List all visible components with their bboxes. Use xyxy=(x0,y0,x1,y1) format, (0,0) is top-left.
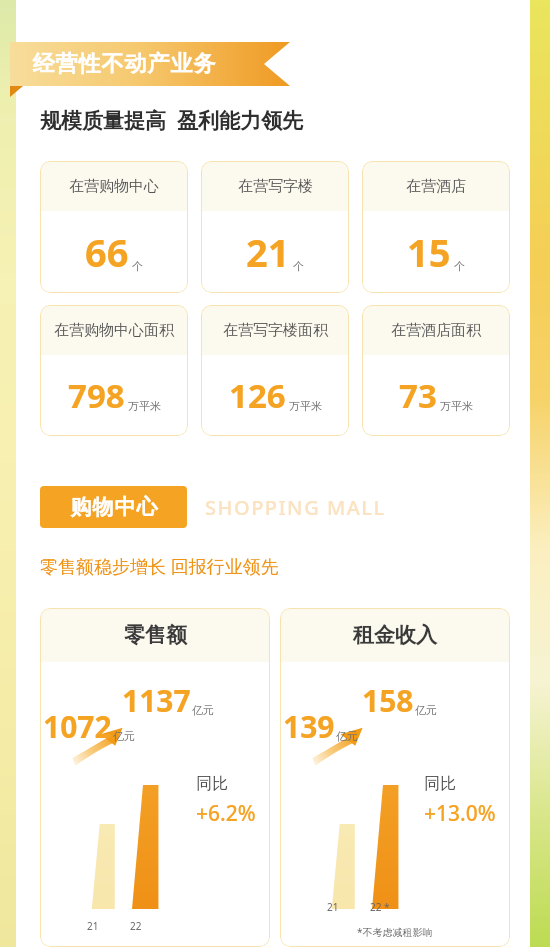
staticText: 购物中心 xyxy=(70,494,158,520)
staticText: 15 xyxy=(407,226,451,278)
staticText: 126 xyxy=(229,373,286,418)
button[interactable]: 在营酒店面积 xyxy=(362,305,510,436)
staticText: 139 xyxy=(283,706,335,747)
staticText: 1072 xyxy=(43,706,112,747)
staticText: 22 * xyxy=(370,900,390,914)
staticText: 个 xyxy=(454,259,465,273)
staticText: 21 xyxy=(246,226,290,278)
staticText: +13.0% xyxy=(424,799,496,828)
staticText: 在营酒店 xyxy=(406,177,466,196)
staticText: 在营写字楼面积 xyxy=(223,321,328,340)
staticText: 万平米 xyxy=(440,399,473,413)
staticText: 798 xyxy=(68,373,125,418)
staticText: 21 xyxy=(327,900,339,914)
staticText: SHOPPING MALL xyxy=(205,494,386,521)
staticText: 个 xyxy=(132,259,143,273)
staticText: 同比 xyxy=(424,774,456,794)
button[interactable]: 经营性不动产业务 xyxy=(10,42,290,86)
staticText: *不考虑减租影响 xyxy=(357,925,433,939)
staticText: 规模质量提高 盈利能力领先 xyxy=(40,106,303,135)
staticText: 个 xyxy=(293,259,304,273)
staticText: 租金收入 xyxy=(353,622,437,648)
staticText: 在营购物中心 xyxy=(69,177,159,196)
staticText: 亿元 xyxy=(113,729,135,743)
button[interactable]: 在营购物中心 xyxy=(40,161,188,293)
staticText: 66 xyxy=(85,226,129,278)
staticText: 22 xyxy=(130,919,142,933)
staticText: 零售额 xyxy=(124,622,187,648)
staticText: 在营酒店面积 xyxy=(391,321,481,340)
button[interactable]: 在营购物中心面积 xyxy=(40,305,188,436)
button[interactable]: 购物中心 xyxy=(40,486,187,528)
staticText: 亿元 xyxy=(415,703,437,717)
staticText: 1137 xyxy=(122,680,191,721)
button[interactable]: 租金收入 xyxy=(280,608,510,947)
button[interactable]: 在营写字楼 xyxy=(201,161,349,293)
staticText: 万平米 xyxy=(289,399,322,413)
staticText: 零售额稳步增长 回报行业领先 xyxy=(40,554,279,579)
staticText: 在营购物中心面积 xyxy=(54,321,174,340)
staticText: 亿元 xyxy=(336,729,358,743)
staticText: 经营性不动产业务 xyxy=(32,50,216,78)
staticText: 21 xyxy=(87,919,99,933)
staticText: 73 xyxy=(399,373,437,418)
staticText: +6.2% xyxy=(196,799,256,828)
button[interactable]: 在营写字楼面积 xyxy=(201,305,349,436)
staticText: 亿元 xyxy=(192,703,214,717)
button[interactable]: 零售额 xyxy=(40,608,270,947)
staticText: 158 xyxy=(362,680,414,721)
staticText: 在营写字楼 xyxy=(238,177,313,196)
button[interactable]: 在营酒店 xyxy=(362,161,510,293)
staticText: 同比 xyxy=(196,774,228,794)
staticText: 万平米 xyxy=(128,399,161,413)
